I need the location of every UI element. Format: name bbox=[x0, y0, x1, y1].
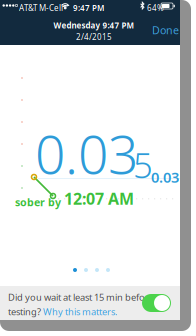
staticText: Did you wait at least 15 min before bbox=[8, 291, 154, 303]
staticText: testing? bbox=[8, 305, 41, 318]
staticText: 64% bbox=[147, 2, 164, 13]
button[interactable]: Waited 15 minutes bbox=[142, 294, 171, 312]
staticText: sober by bbox=[15, 195, 61, 209]
staticText: Done bbox=[152, 23, 179, 37]
staticText: Wednesday 9:47 PM bbox=[53, 20, 134, 31]
staticText: 5 bbox=[133, 142, 153, 188]
staticText: 0.03 bbox=[35, 118, 138, 189]
button[interactable]: Why this matters. bbox=[43, 305, 118, 318]
staticText: 9:47 PM bbox=[73, 2, 104, 13]
staticText: 2/4/2015 bbox=[76, 32, 112, 42]
staticText: 0.03 bbox=[151, 167, 179, 187]
staticText: 12:07 AM bbox=[64, 188, 134, 209]
staticText: Why this matters. bbox=[43, 305, 118, 318]
staticText: AT&T M-Cell bbox=[19, 2, 63, 13]
button[interactable]: Done bbox=[145, 21, 179, 39]
